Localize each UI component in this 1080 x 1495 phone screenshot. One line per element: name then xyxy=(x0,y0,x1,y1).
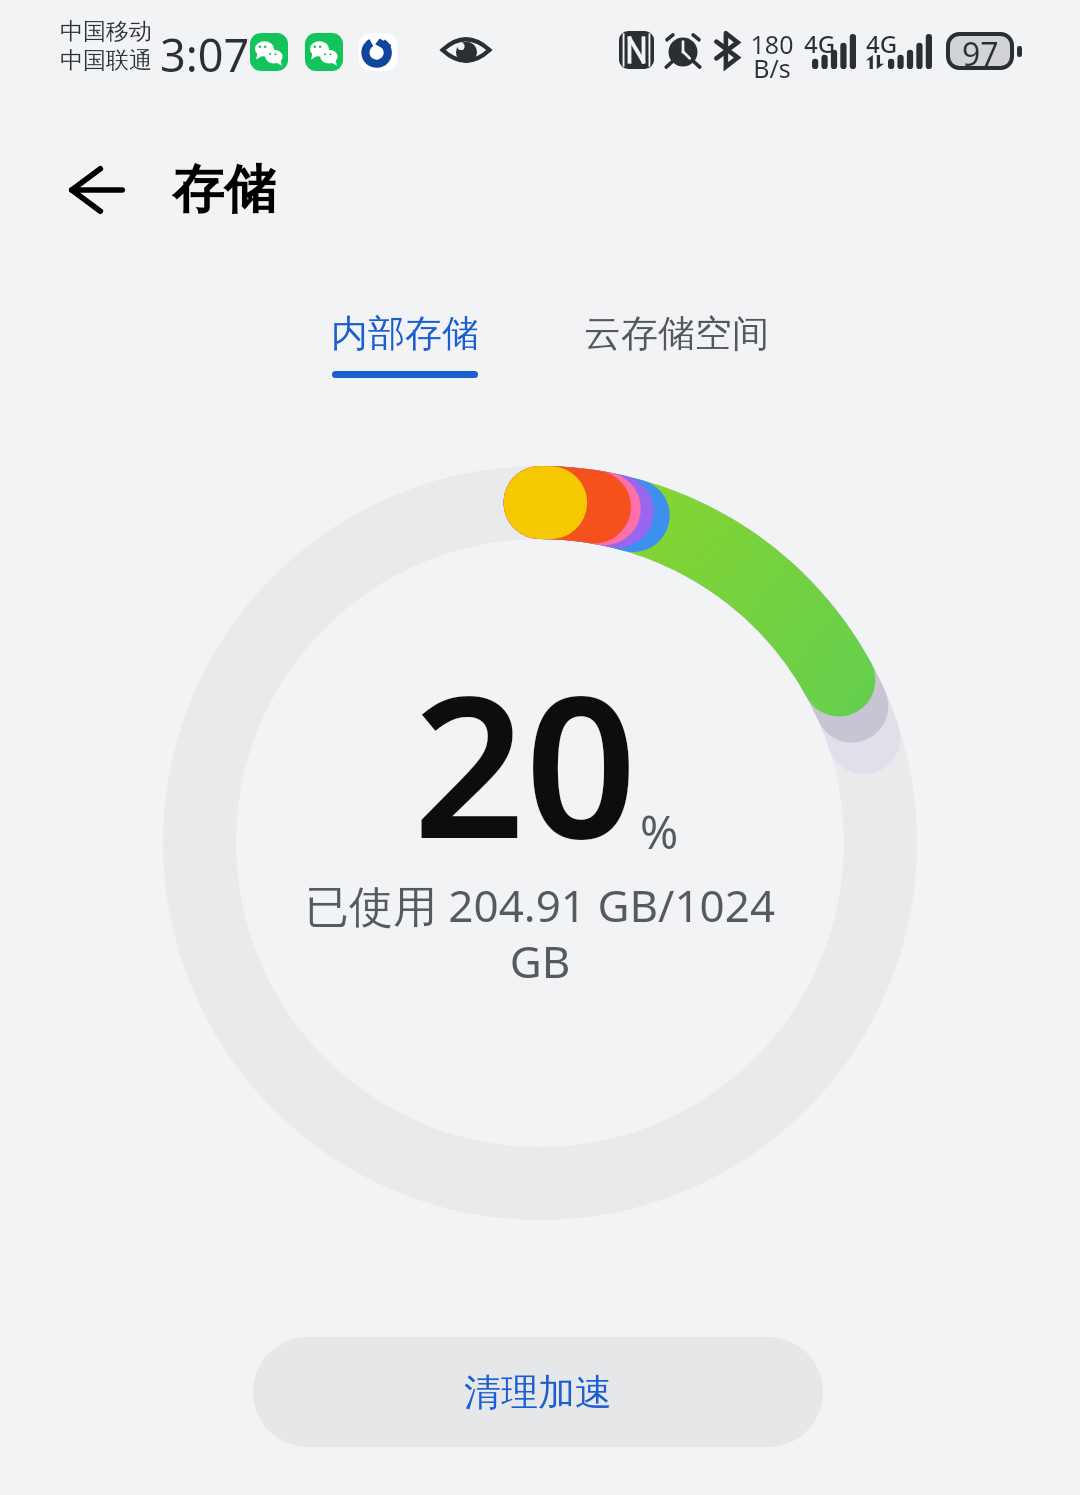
staticText: 97 xyxy=(962,32,999,70)
staticText: 中国移动 xyxy=(60,17,152,46)
staticText: 4G xyxy=(866,27,898,60)
staticText: 20 xyxy=(413,628,638,895)
staticText: 3:07 xyxy=(160,24,250,85)
staticText: % xyxy=(640,800,679,863)
button[interactable]: 内部存储 xyxy=(285,310,525,378)
staticText: 云存储空间 xyxy=(584,310,769,357)
staticText: 4G xyxy=(804,27,836,60)
button[interactable]: 清理加速 xyxy=(253,1337,823,1447)
staticText: 清理加速 xyxy=(464,1369,612,1416)
staticText: 中国联通 xyxy=(60,46,152,75)
staticText: 已使用 204.91 GB/1024 GB xyxy=(297,875,783,991)
staticText: 内部存储 xyxy=(331,310,479,357)
staticText: 存储 xyxy=(172,157,276,223)
button[interactable]: Back xyxy=(44,145,149,235)
staticText: 180 B/s xyxy=(750,27,794,85)
button[interactable]: 云存储空间 xyxy=(556,310,796,378)
